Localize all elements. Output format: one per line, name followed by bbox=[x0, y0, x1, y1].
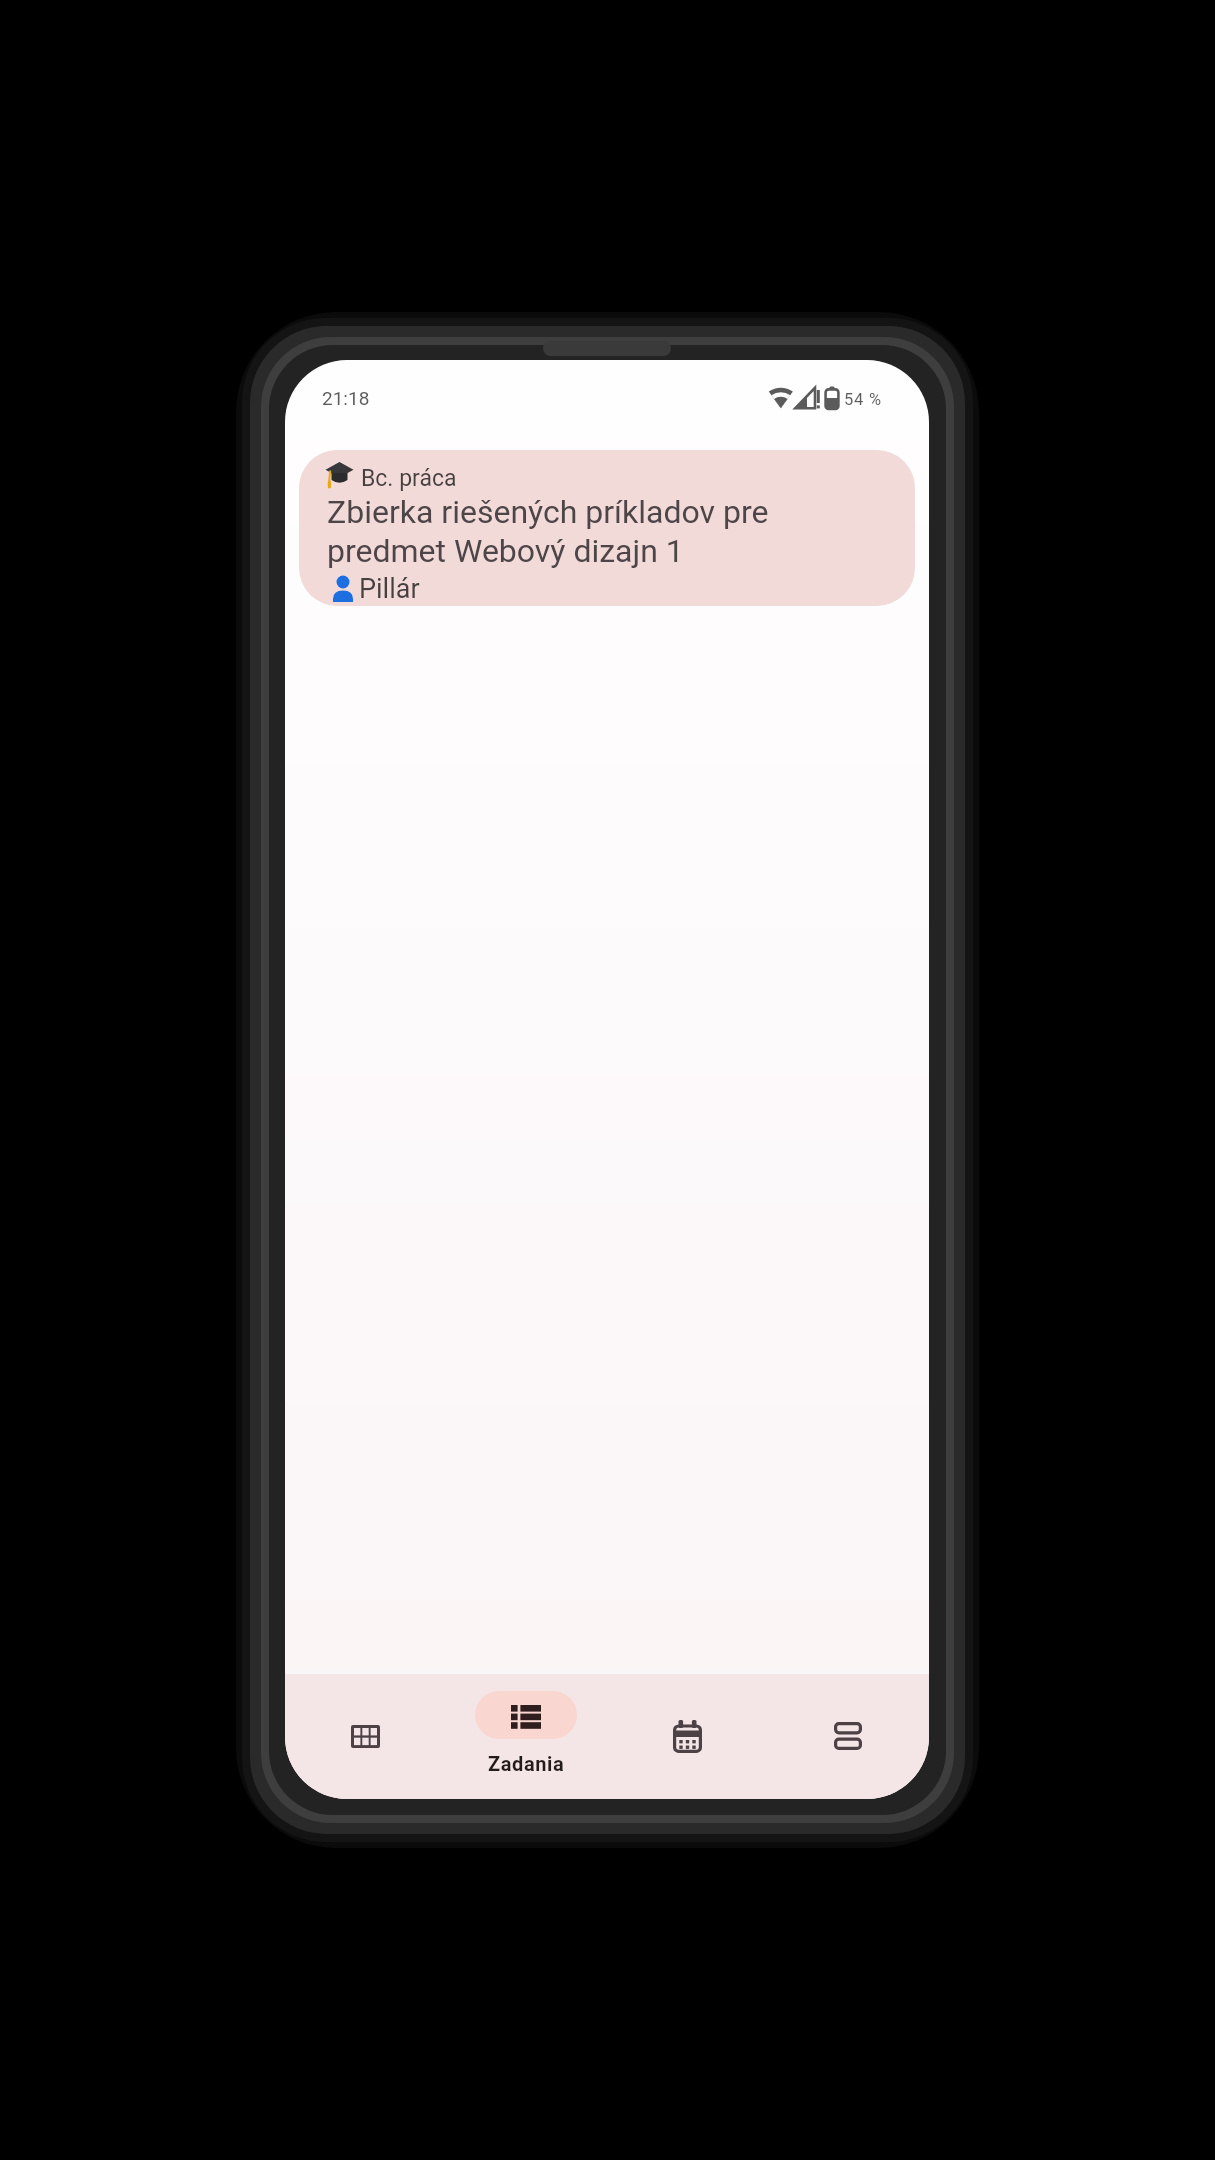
staticText: Zbierka riešených príkladov pre predmet … bbox=[327, 493, 769, 570]
button[interactable] bbox=[768, 1674, 929, 1799]
staticText: Pillár bbox=[359, 573, 420, 605]
staticText: Zadania bbox=[488, 1752, 565, 1775]
button[interactable]: Bc. práca bbox=[299, 450, 915, 606]
staticText: Bc. práca bbox=[361, 465, 457, 492]
staticText: 21:18 bbox=[322, 387, 370, 409]
button[interactable] bbox=[607, 1674, 768, 1799]
button[interactable] bbox=[285, 1674, 446, 1799]
staticText: 54 % bbox=[844, 390, 882, 409]
button[interactable]: Zadania bbox=[446, 1674, 607, 1799]
